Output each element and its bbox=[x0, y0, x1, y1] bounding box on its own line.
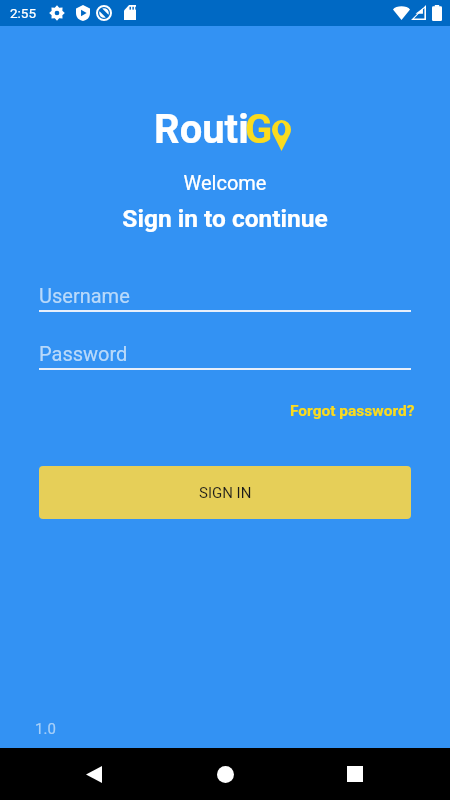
staticText: Routi bbox=[154, 106, 249, 153]
button[interactable]: Forgot password? bbox=[288, 399, 417, 423]
staticText: 1.0 bbox=[35, 720, 56, 738]
staticText: SIGN IN bbox=[199, 484, 252, 502]
button[interactable]: SIGN IN bbox=[39, 466, 411, 519]
staticText: G bbox=[245, 106, 273, 153]
staticText: Username bbox=[39, 284, 130, 307]
staticText: Sign in to continue bbox=[0, 204, 450, 233]
staticText: 2:55 bbox=[10, 5, 37, 21]
button[interactable]: Home bbox=[204, 753, 246, 795]
staticText: Forgot password? bbox=[290, 402, 415, 420]
button[interactable]: Recent apps bbox=[334, 753, 376, 795]
button[interactable]: Password bbox=[39, 342, 411, 370]
staticText: Welcome bbox=[0, 171, 450, 194]
button[interactable]: Username bbox=[39, 284, 411, 312]
button[interactable]: Back bbox=[73, 753, 115, 795]
staticText: Password bbox=[39, 342, 128, 365]
